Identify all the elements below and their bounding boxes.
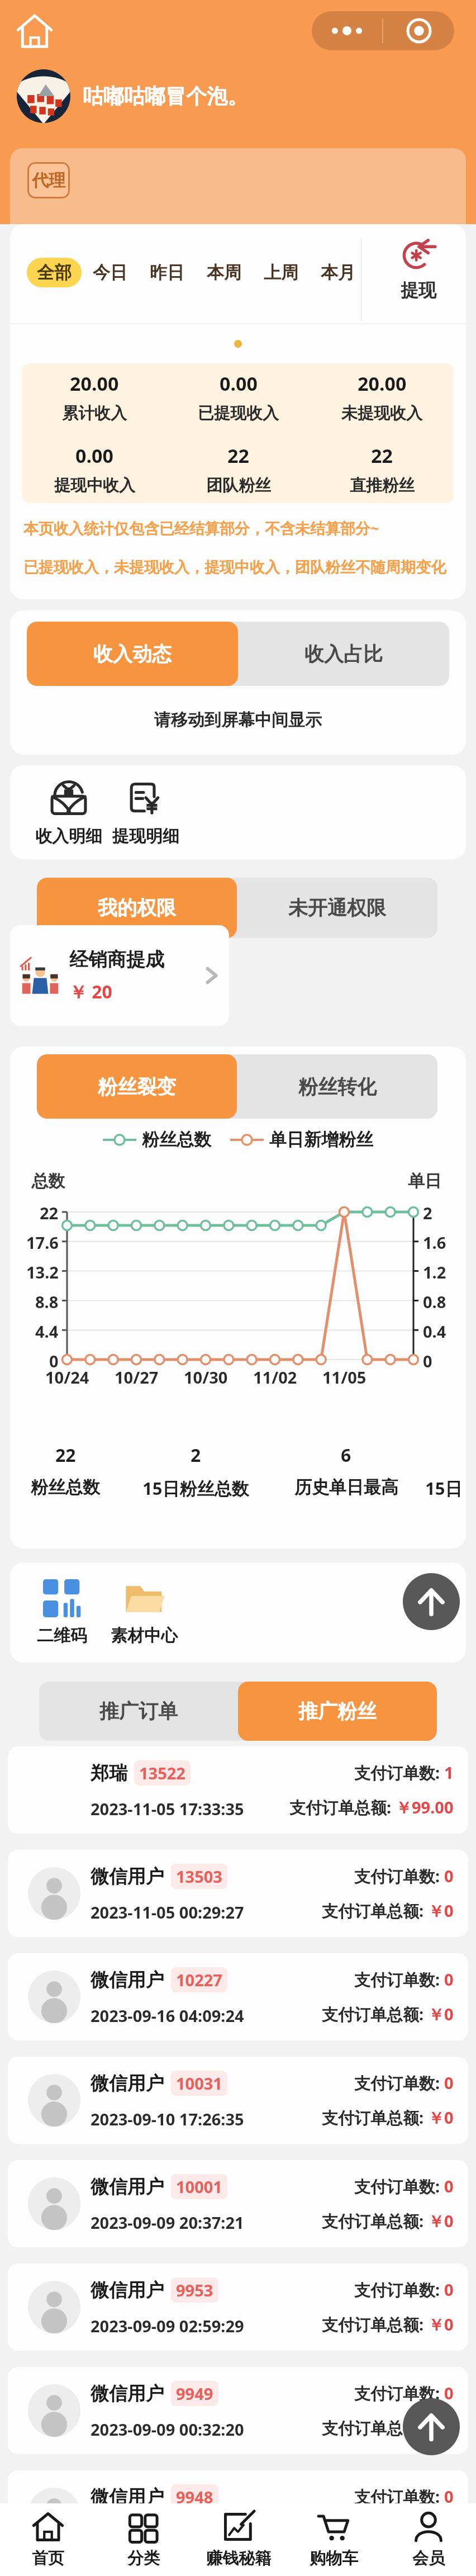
staticText: 支付订单总额: xyxy=(322,1900,428,1922)
button[interactable]: 代理 xyxy=(27,162,70,198)
staticText: 历史单日最高 xyxy=(294,1476,398,1498)
staticText: 22 xyxy=(371,443,393,468)
staticText: 17.6 xyxy=(26,1232,59,1253)
staticText: 20.00 xyxy=(358,371,407,396)
staticText: 0 xyxy=(444,1865,454,1887)
staticText: 累计收入 xyxy=(62,403,127,424)
staticText: 8.8 xyxy=(35,1291,59,1313)
staticText: 素材中心 xyxy=(111,1625,178,1646)
staticText: 本页收入统计仅包含已经结算部分，不含未结算部分~ xyxy=(23,518,379,538)
staticText: 分类 xyxy=(127,2548,160,2569)
staticText: ￥0 xyxy=(428,2520,454,2542)
button[interactable]: 未开通权限 xyxy=(237,878,437,938)
staticText: 咕嘟咕嘟冒个泡。 xyxy=(83,83,248,110)
staticText: 提现明细 xyxy=(112,826,179,847)
button[interactable]: 推广粉丝 xyxy=(238,1682,437,1741)
button[interactable]: 本月 xyxy=(310,258,366,287)
button[interactable]: 首页 xyxy=(0,2503,96,2576)
staticText: 0.8 xyxy=(423,1291,446,1313)
staticText: 支付订单数: xyxy=(354,2485,444,2508)
staticText: ￥99.00 xyxy=(396,1796,454,1819)
staticText: 本月 xyxy=(321,262,355,283)
staticText: 收入动态 xyxy=(93,642,172,666)
button[interactable]: 提现 xyxy=(371,235,466,301)
button[interactable]: 收入占比 xyxy=(238,622,449,686)
staticText: 微信用户 xyxy=(91,2279,164,2302)
button[interactable]: Home xyxy=(12,9,57,54)
button[interactable]: More xyxy=(312,11,382,50)
button[interactable]: Back to top xyxy=(403,1573,460,1630)
staticText: 支付订单数: xyxy=(354,1968,444,1991)
staticText: 微信用户 xyxy=(91,2485,164,2509)
staticText: ￥0 xyxy=(428,2106,454,2129)
staticText: 支付订单总额: xyxy=(322,2106,428,2129)
staticText: 收入明细 xyxy=(35,826,102,847)
button[interactable]: 我的权限 xyxy=(37,878,237,938)
staticText: 全部 xyxy=(37,262,72,283)
staticText: 0 xyxy=(444,2175,454,2197)
staticText: 0.00 xyxy=(220,371,258,396)
staticText: 0 xyxy=(444,2382,454,2404)
button[interactable]: 赚钱秘籍 xyxy=(191,2503,286,2576)
staticText: 0 xyxy=(49,1350,59,1372)
staticText: 0 xyxy=(444,2485,454,2507)
button[interactable]: Close xyxy=(383,11,454,50)
button[interactable]: Scroll to top xyxy=(403,2398,460,2455)
button[interactable]: 购物车 xyxy=(286,2503,381,2576)
button[interactable]: 微信用户 xyxy=(8,2470,468,2558)
button[interactable]: 郑瑞 xyxy=(8,1746,468,1834)
button[interactable]: 二维码 xyxy=(37,1579,87,1646)
staticText: 收入占比 xyxy=(304,642,383,666)
staticText: 0 xyxy=(444,1968,454,1990)
button[interactable]: 粉丝裂变 xyxy=(37,1054,237,1119)
staticText: 微信用户 xyxy=(91,1865,164,1888)
staticText: ￥0 xyxy=(428,2003,454,2025)
staticText: 0 xyxy=(444,2072,454,2094)
staticText: 粉丝转化 xyxy=(298,1074,377,1099)
staticText: 11/05 xyxy=(322,1366,366,1388)
staticText: 1.2 xyxy=(423,1261,446,1283)
staticText: 提现 xyxy=(401,279,436,301)
button[interactable]: 经销商提成 xyxy=(10,925,229,1026)
button[interactable]: 收入明细 xyxy=(30,779,107,847)
button[interactable]: 提现明细 xyxy=(107,779,184,847)
button[interactable]: 全部 xyxy=(27,258,82,287)
staticText: 1 xyxy=(444,1761,454,1783)
staticText: 支付订单数: xyxy=(354,2382,444,2404)
staticText: 2023-09-16 04:09:24 xyxy=(91,2005,244,2026)
staticText: 22 xyxy=(55,1443,76,1467)
button[interactable]: 微信用户 xyxy=(8,2057,468,2144)
staticText: 总数 xyxy=(31,1171,65,1192)
button[interactable]: 昨日 xyxy=(139,258,196,287)
staticText: 9948 xyxy=(176,2486,213,2508)
button[interactable]: 收入动态 xyxy=(27,622,238,686)
staticText: 推广订单 xyxy=(99,1699,178,1723)
button[interactable]: 微信用户 xyxy=(8,1953,468,2040)
button[interactable]: 上周 xyxy=(253,258,310,287)
staticText: 提现中收入 xyxy=(54,475,135,496)
staticText: 10/27 xyxy=(115,1366,159,1388)
staticText: 2023-11-05 00:29:27 xyxy=(91,1901,244,1923)
staticText: 支付订单数: xyxy=(354,2072,444,2094)
button[interactable]: 微信用户 xyxy=(8,1850,468,1937)
button[interactable]: 推广订单 xyxy=(39,1682,238,1741)
button[interactable]: 今日 xyxy=(82,258,139,287)
staticText: 昨日 xyxy=(150,262,184,283)
button[interactable]: 微信用户 xyxy=(8,2264,468,2351)
button[interactable]: 本周 xyxy=(196,258,253,287)
staticText: 购物车 xyxy=(310,2548,358,2569)
button[interactable]: 会员 xyxy=(381,2503,476,2576)
staticText: 粉丝总数 xyxy=(31,1476,100,1498)
staticText: 2 xyxy=(423,1202,432,1224)
button[interactable]: 微信用户 xyxy=(8,2160,468,2247)
button[interactable]: 微信用户 xyxy=(8,2367,468,2454)
staticText: 微信用户 xyxy=(91,1968,164,1992)
button[interactable]: 分类 xyxy=(96,2503,191,2576)
staticText: 推广粉丝 xyxy=(298,1699,377,1723)
button[interactable]: 素材中心 xyxy=(111,1579,178,1646)
staticText: 2023-09-09 20:37:21 xyxy=(91,2212,244,2233)
button[interactable]: 咕嘟咕嘟冒个泡。 xyxy=(17,69,248,123)
staticText: 11/02 xyxy=(253,1366,297,1388)
button[interactable]: 粉丝转化 xyxy=(237,1054,437,1119)
staticText: 今日 xyxy=(93,262,127,283)
